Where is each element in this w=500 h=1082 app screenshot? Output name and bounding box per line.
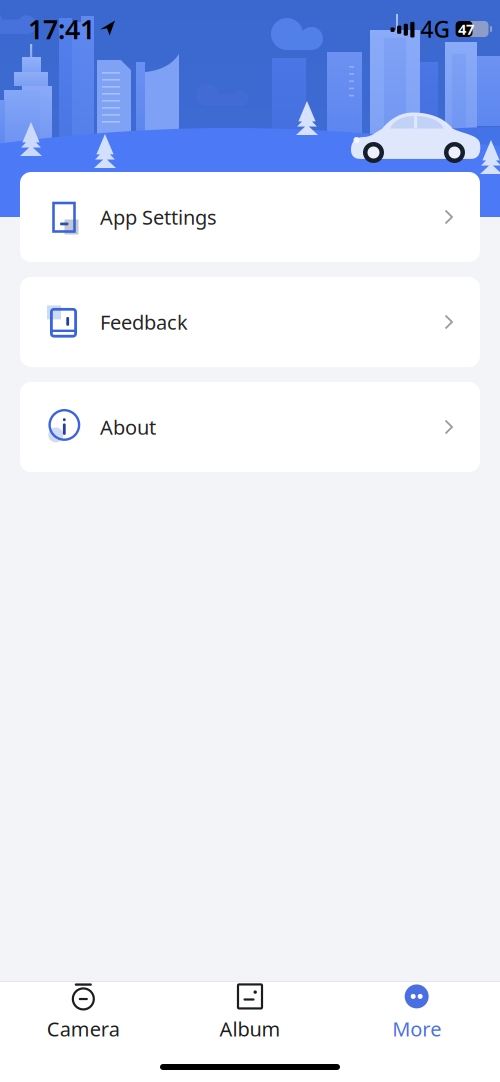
staticText: Feedback bbox=[100, 309, 188, 335]
staticText: About bbox=[100, 414, 156, 440]
staticText: 47 bbox=[458, 19, 474, 39]
button[interactable]: Camera bbox=[0, 983, 167, 1043]
button[interactable]: About bbox=[20, 382, 480, 472]
staticText: App Settings bbox=[100, 204, 217, 230]
staticText: 4G bbox=[420, 14, 449, 44]
button[interactable]: Feedback bbox=[20, 277, 480, 367]
button[interactable]: More bbox=[333, 983, 500, 1043]
staticText: More bbox=[392, 1015, 441, 1042]
button[interactable]: Album bbox=[167, 983, 333, 1043]
button[interactable]: App Settings bbox=[20, 172, 480, 262]
staticText: Album bbox=[219, 1015, 280, 1042]
staticText: Camera bbox=[47, 1015, 120, 1042]
staticText: 17:41 bbox=[28, 11, 95, 47]
